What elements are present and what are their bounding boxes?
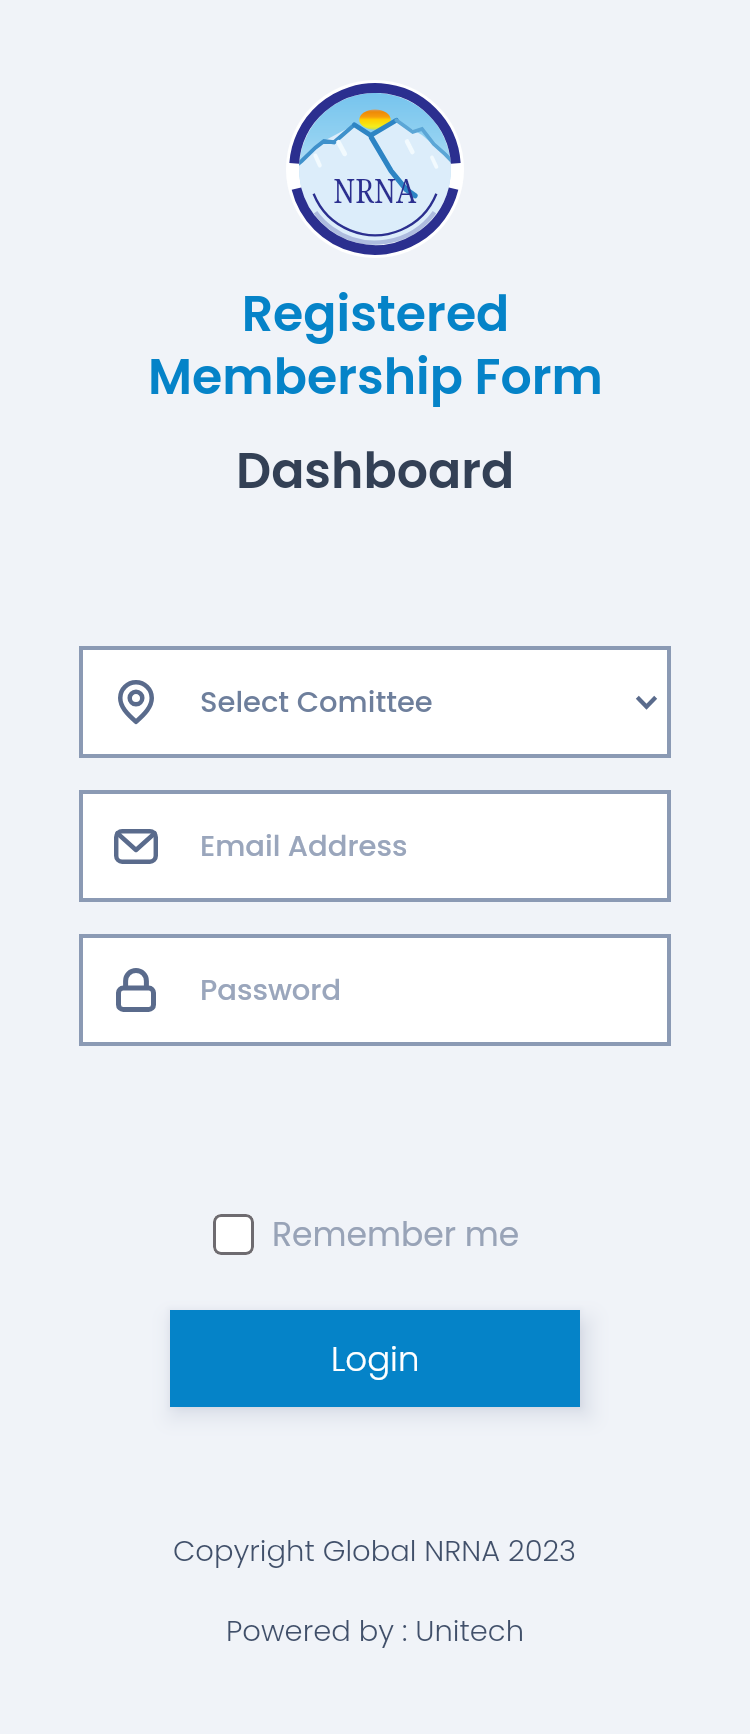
button[interactable]: Remember me <box>213 1211 520 1257</box>
staticText: Email Address <box>200 826 408 867</box>
other: Password <box>114 968 158 1012</box>
staticText: Powered by : Unitech <box>226 1611 525 1652</box>
staticText: NRNA <box>333 168 417 213</box>
staticText: Password <box>200 970 342 1011</box>
button[interactable]: Password <box>79 934 671 1046</box>
staticText: Select Comittee <box>200 682 433 723</box>
staticText: Login <box>331 1335 420 1383</box>
staticText: Registered Membership Form <box>148 280 603 411</box>
staticText: Copyright Global NRNA 2023 <box>173 1531 577 1572</box>
other: Select committee <box>114 680 158 724</box>
button[interactable]: Select committee <box>79 646 671 758</box>
other: Email address <box>114 829 158 864</box>
staticText: Dashboard <box>236 437 515 506</box>
button[interactable]: Email address <box>79 790 671 902</box>
button[interactable]: Login <box>170 1310 580 1407</box>
staticText: Remember me <box>272 1211 520 1257</box>
